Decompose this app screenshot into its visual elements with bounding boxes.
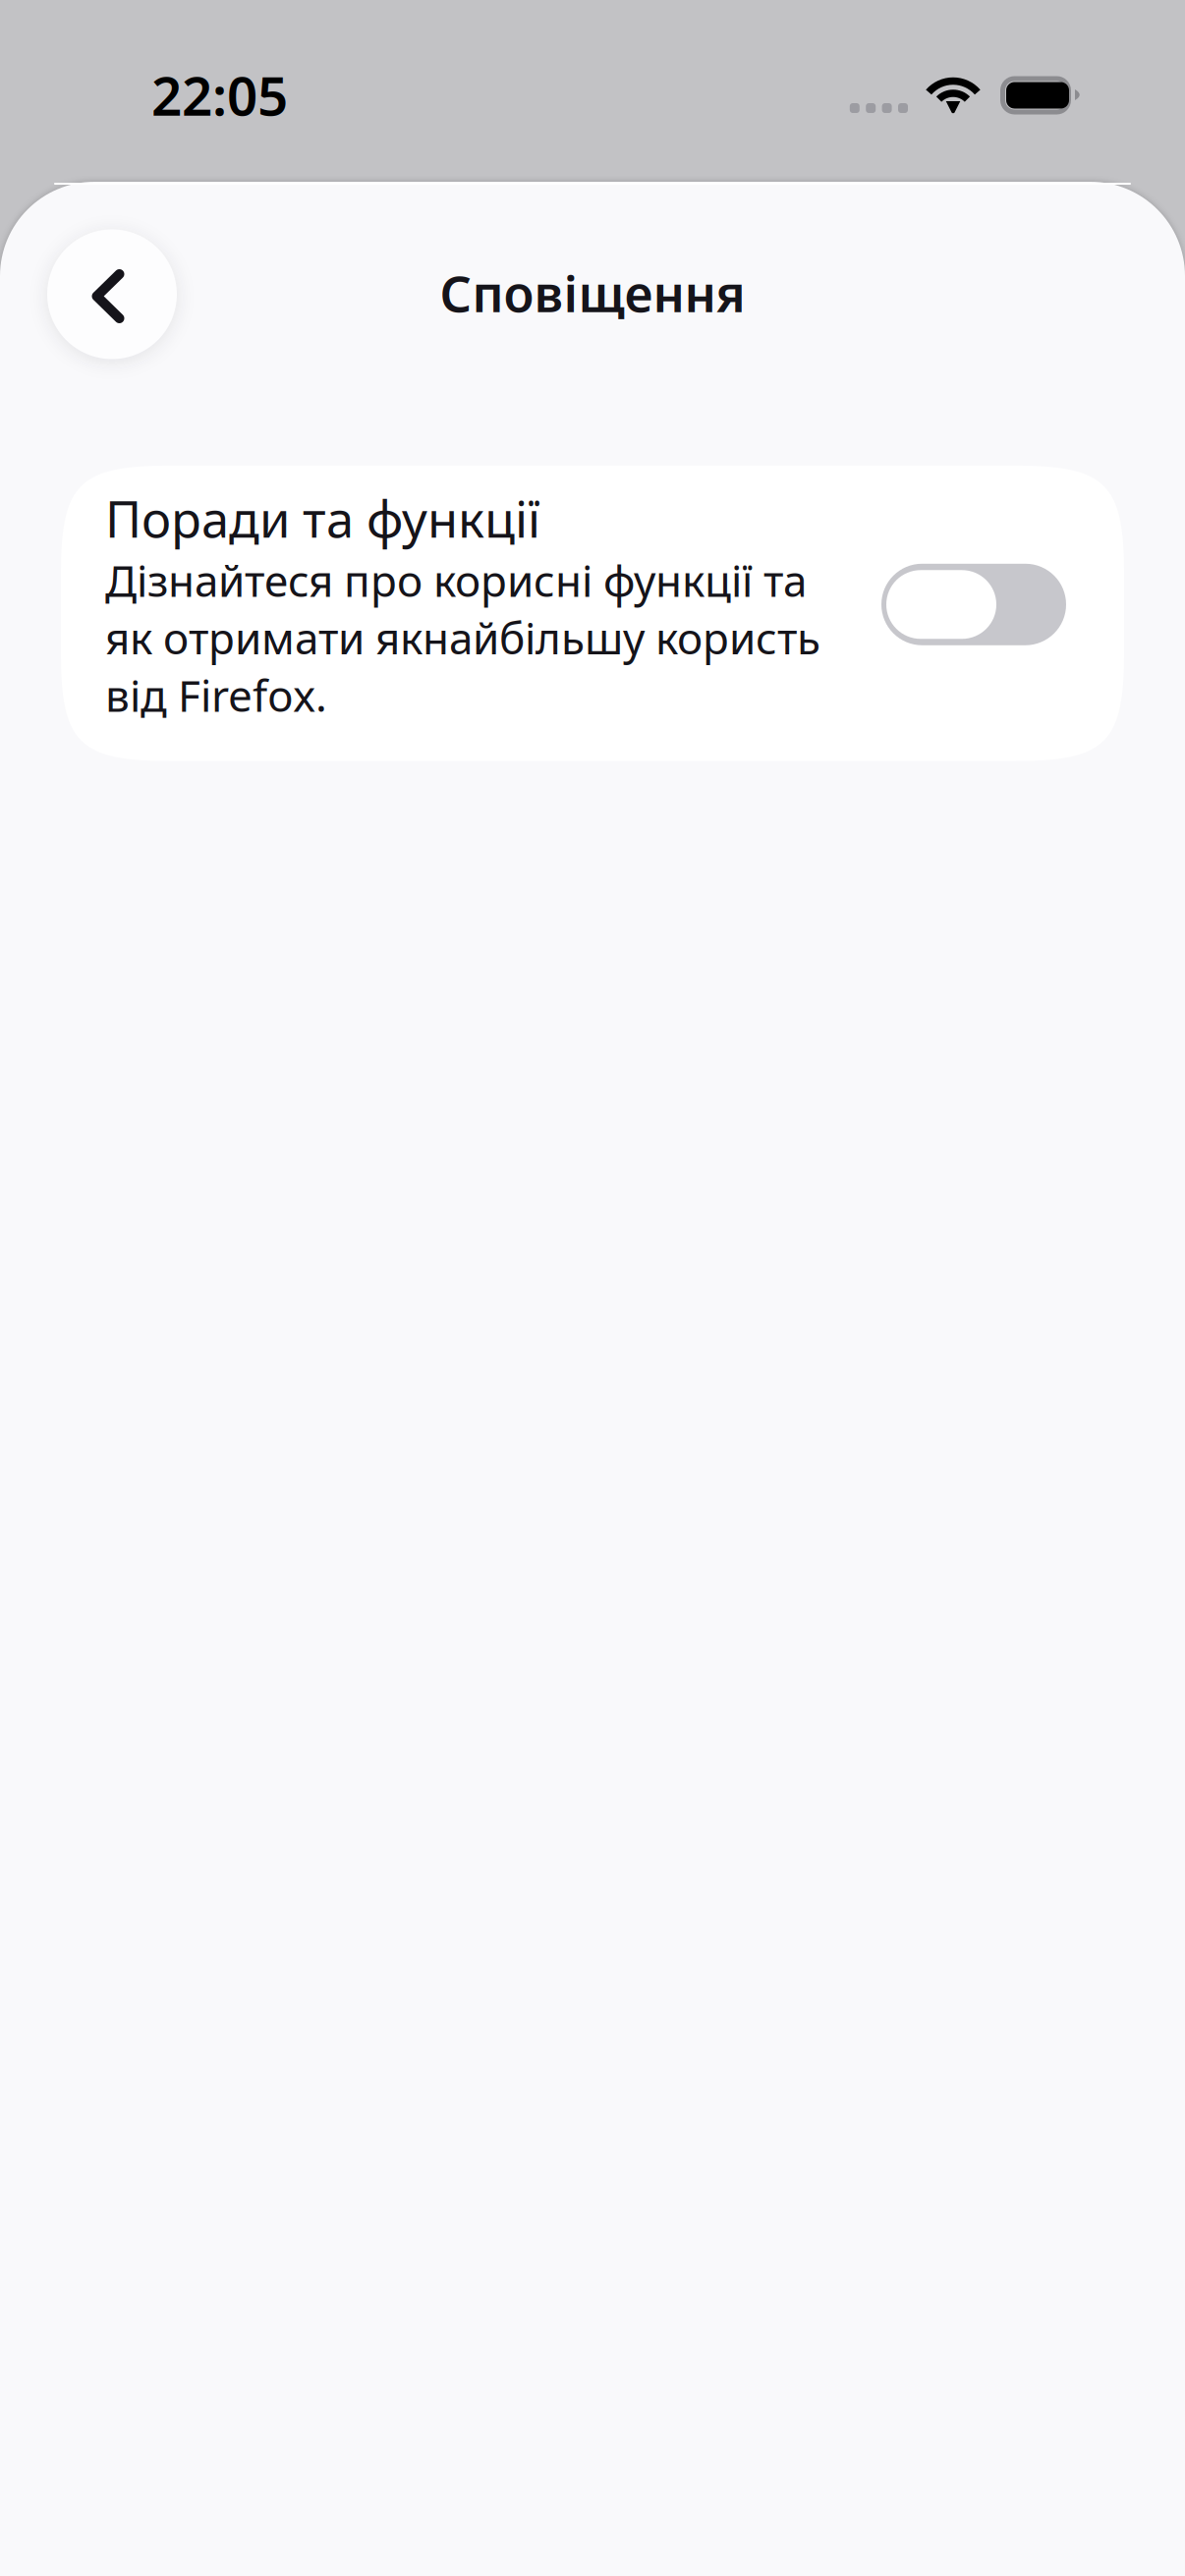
- staticText: Сповіщення: [440, 260, 745, 326]
- button[interactable]: Поради та функції: [61, 466, 1124, 761]
- staticText: 22:05: [151, 59, 288, 130]
- button[interactable]: Назад: [47, 226, 177, 359]
- staticText: Поради та функції: [105, 485, 540, 551]
- staticText: Дізнайтеся про корисні функції та як отр…: [105, 551, 820, 724]
